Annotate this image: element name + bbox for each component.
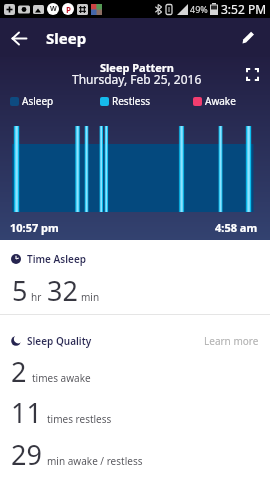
staticText: Asleep: [22, 94, 54, 108]
staticText: Restless: [112, 94, 151, 108]
staticText: min: [81, 290, 100, 304]
staticText: Sleep Quality: [27, 334, 92, 348]
staticText: W: [50, 4, 57, 14]
staticText: times awake: [32, 371, 91, 385]
staticText: 2: [11, 353, 27, 390]
staticText: 10:57 pm: [10, 220, 59, 235]
staticText: Thursday, Feb 25, 2016: [72, 71, 202, 87]
staticText: Sleep Pattern: [100, 60, 174, 75]
staticText: 32: [47, 272, 78, 309]
staticText: min awake / restless: [47, 454, 143, 468]
staticText: 4:58 am: [215, 220, 258, 235]
staticText: Time Asleep: [27, 252, 87, 266]
staticText: times restless: [47, 412, 112, 426]
staticText: hr: [31, 290, 42, 304]
staticText: 5: [12, 272, 28, 309]
staticText: Sleep: [46, 28, 87, 48]
staticText: 29: [11, 436, 42, 473]
staticText: Awake: [205, 94, 236, 108]
button[interactable]: [6, 25, 32, 51]
button[interactable]: Time Asleep: [11, 252, 87, 266]
staticText: P: [66, 4, 71, 15]
staticText: 3:52 PM: [221, 1, 267, 17]
staticText: 11: [11, 394, 42, 431]
staticText: Learn more: [204, 334, 259, 348]
staticText: 49%: [190, 3, 208, 15]
button[interactable]: Sleep Quality: [11, 334, 259, 348]
button[interactable]: [244, 66, 261, 83]
button[interactable]: [235, 25, 261, 51]
